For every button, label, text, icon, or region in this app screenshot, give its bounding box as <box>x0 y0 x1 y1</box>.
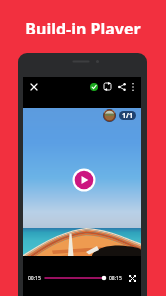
button[interactable]: Play <box>72 168 96 192</box>
staticText: Build-in Player <box>25 18 141 34</box>
button[interactable]: Fullscreen <box>126 272 138 284</box>
button[interactable]: Repeat <box>101 80 114 93</box>
button[interactable]: Close <box>26 79 41 94</box>
button[interactable]: Downloaded <box>87 80 100 93</box>
button[interactable]: Share <box>115 80 128 93</box>
staticText: 1/1 <box>122 111 133 120</box>
button[interactable]: Profile <box>103 109 116 122</box>
button[interactable]: Page 1 of 1 <box>119 111 136 120</box>
staticText: 08:15 <box>109 275 122 281</box>
button[interactable]: More options <box>127 81 139 93</box>
staticText: 00:15 <box>28 275 41 281</box>
